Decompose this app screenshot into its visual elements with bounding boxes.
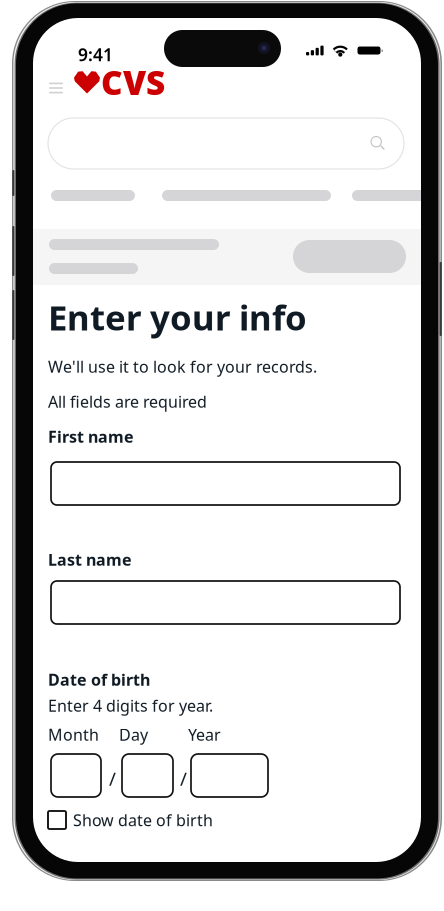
staticText: / <box>180 766 187 791</box>
staticText: Last name <box>48 549 132 570</box>
staticText: Day <box>119 724 148 745</box>
button[interactable]: Search <box>48 118 404 169</box>
staticText: All fields are required <box>48 391 207 412</box>
staticText: Month <box>48 724 99 745</box>
staticText: We'll use it to look for your records. <box>48 356 317 377</box>
staticText: 9:41 <box>78 43 113 66</box>
staticText: Year <box>188 724 221 745</box>
button[interactable]: CVS home <box>74 69 165 95</box>
button[interactable]: Menu <box>45 74 71 102</box>
staticText: First name <box>48 426 134 447</box>
staticText: CVS <box>101 60 165 104</box>
staticText: / <box>109 766 116 791</box>
staticText: Show date of birth <box>73 809 213 831</box>
staticText: Date of birth <box>48 669 150 690</box>
staticText: Enter 4 digits for year. <box>48 695 213 716</box>
button[interactable]: Show date of birth <box>48 809 213 831</box>
staticText: Enter your info <box>48 294 307 340</box>
